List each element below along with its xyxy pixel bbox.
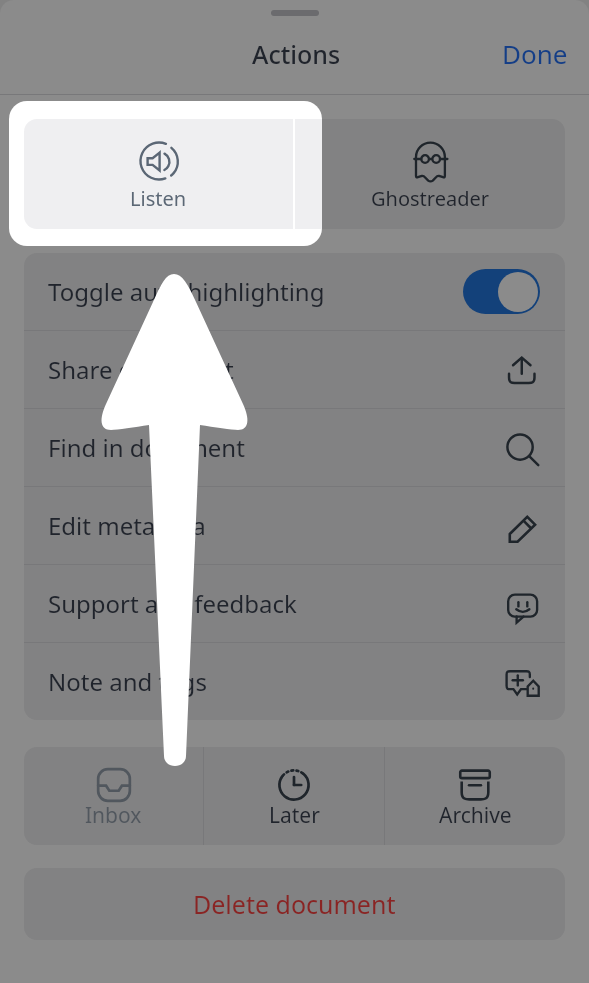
button[interactable]: Toggle auto highlighting bbox=[463, 269, 540, 314]
staticText: Done bbox=[502, 36, 568, 71]
staticText: Actions bbox=[252, 37, 341, 71]
other: Find in document bbox=[502, 429, 540, 467]
button[interactable]: Inbox bbox=[24, 747, 203, 845]
staticText: Inbox bbox=[85, 801, 142, 830]
staticText: Delete document bbox=[193, 887, 396, 921]
button[interactable]: Archive bbox=[385, 747, 565, 845]
staticText: Listen bbox=[130, 185, 187, 212]
staticText: Archive bbox=[439, 801, 512, 830]
button[interactable]: Toggle auto highlighting bbox=[24, 253, 565, 330]
other: Share document bbox=[502, 351, 540, 389]
staticText: Listen bbox=[130, 185, 187, 212]
staticText: Note and tags bbox=[48, 665, 207, 698]
staticText: Find in document bbox=[48, 431, 245, 464]
staticText: Later bbox=[269, 801, 320, 830]
staticText: Support and feedback bbox=[48, 587, 297, 620]
other: Edit metadata bbox=[502, 507, 540, 545]
button[interactable]: Note and tags bbox=[24, 643, 565, 720]
other: Support and feedback bbox=[502, 585, 540, 623]
button[interactable]: Share document bbox=[24, 331, 565, 408]
staticText: Edit metadata bbox=[48, 509, 206, 542]
staticText: Toggle auto highlighting bbox=[48, 275, 325, 308]
other: Note and tags bbox=[502, 663, 540, 701]
staticText: Ghostreader bbox=[371, 185, 490, 212]
button[interactable]: Listen bbox=[24, 119, 293, 229]
button[interactable]: Support and feedback bbox=[24, 565, 565, 642]
button[interactable]: Find in document bbox=[24, 409, 565, 486]
button[interactable]: Done bbox=[482, 28, 589, 79]
button[interactable]: Listen bbox=[24, 119, 293, 229]
button[interactable]: Edit metadata bbox=[24, 487, 565, 564]
button[interactable]: Later bbox=[204, 747, 384, 845]
staticText: Share document bbox=[48, 353, 234, 386]
button[interactable]: Ghostreader bbox=[295, 119, 565, 229]
button[interactable]: Delete document bbox=[24, 868, 565, 940]
